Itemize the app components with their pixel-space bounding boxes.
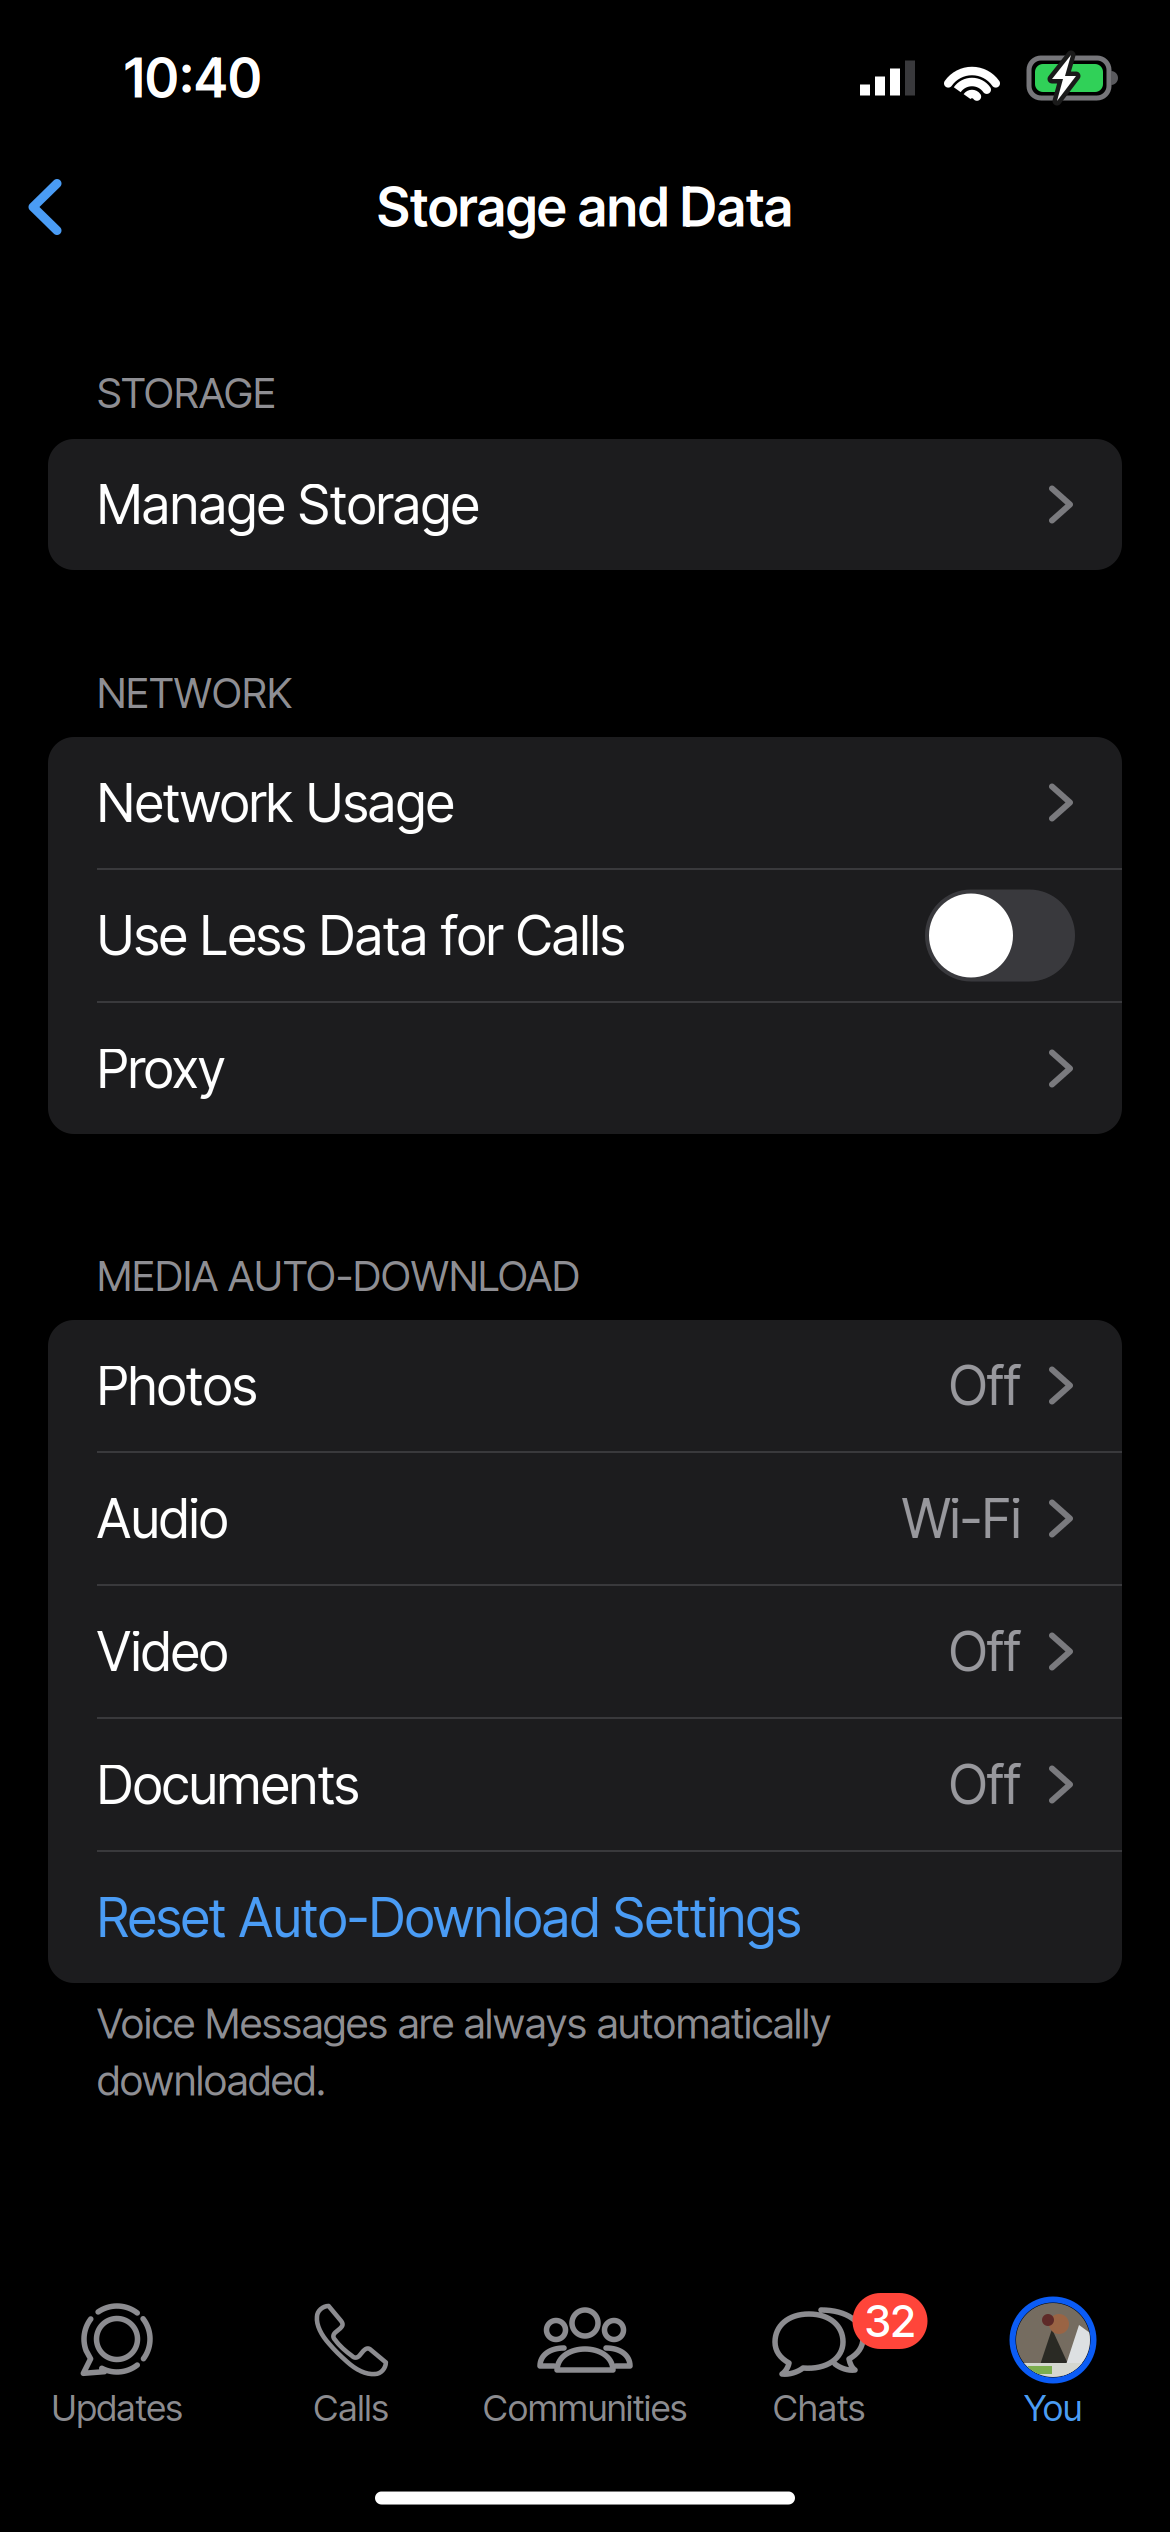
staticText: 10:40: [124, 46, 262, 110]
staticText: Calls: [313, 2386, 388, 2430]
button[interactable]: Communities: [468, 2289, 702, 2437]
staticText: Storage and Data: [377, 175, 793, 239]
staticText: Wi-Fi: [902, 1486, 1021, 1551]
button[interactable]: Proxy: [48, 1003, 1122, 1134]
staticText: Manage Storage: [97, 472, 479, 537]
staticText: Voice Messages are always automatically: [97, 1998, 831, 2048]
button[interactable]: Manage Storage: [48, 439, 1122, 570]
button[interactable]: Reset Auto-Download Settings: [48, 1852, 1122, 1983]
staticText: Network Usage: [97, 770, 454, 835]
staticText: Off: [949, 1752, 1021, 1817]
button[interactable]: Video: [48, 1586, 1122, 1717]
staticText: Reset Auto-Download Settings: [97, 1885, 801, 1950]
button[interactable]: Calls: [234, 2289, 468, 2437]
staticText: downloaded.: [97, 2055, 326, 2105]
staticText: Chats: [773, 2386, 865, 2430]
button[interactable]: You: [936, 2289, 1170, 2437]
staticText: Proxy: [97, 1036, 225, 1101]
staticText: MEDIA AUTO-DOWNLOAD: [97, 1251, 580, 1301]
staticText: 32: [864, 2294, 915, 2348]
staticText: Communities: [483, 2386, 687, 2430]
button[interactable]: Photos: [48, 1320, 1122, 1451]
staticText: Documents: [97, 1752, 359, 1817]
staticText: You: [1024, 2386, 1082, 2430]
staticText: Video: [97, 1619, 228, 1684]
button[interactable]: Audio: [48, 1453, 1122, 1584]
button[interactable]: Back: [0, 152, 100, 262]
button[interactable]: Updates: [0, 2289, 234, 2437]
staticText: Audio: [97, 1486, 228, 1551]
staticText: Off: [949, 1353, 1021, 1418]
staticText: NETWORK: [97, 668, 292, 718]
staticText: STORAGE: [97, 368, 276, 418]
button[interactable]: Use Less Data for Calls: [48, 870, 1122, 1001]
button[interactable]: Network Usage: [48, 737, 1122, 868]
staticText: Use Less Data for Calls: [97, 903, 625, 968]
staticText: Off: [949, 1619, 1021, 1684]
button[interactable]: Chats: [702, 2289, 936, 2437]
staticText: Updates: [51, 2386, 182, 2430]
button[interactable]: Documents: [48, 1719, 1122, 1850]
staticText: Photos: [97, 1353, 257, 1418]
